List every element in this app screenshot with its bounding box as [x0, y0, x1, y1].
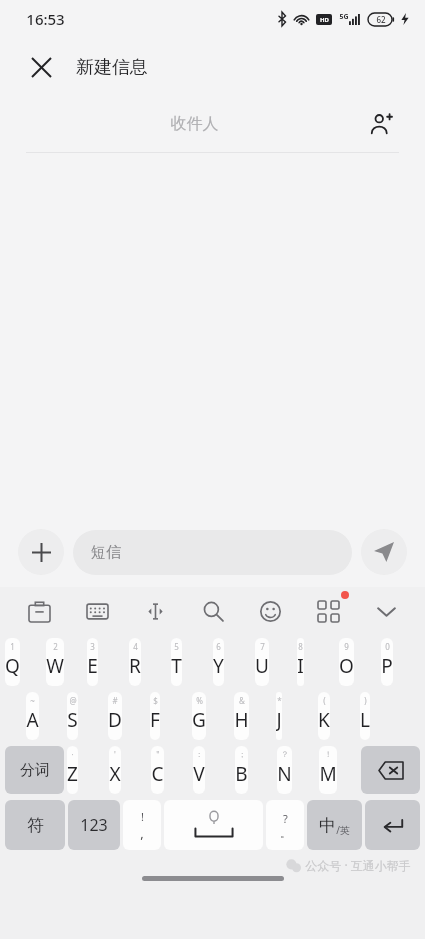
button[interactable]: 6 — [213, 638, 224, 686]
staticText: , — [140, 824, 144, 842]
staticText: · — [71, 749, 74, 760]
button[interactable]: # — [108, 692, 122, 740]
staticText: 新建信息 — [76, 56, 148, 79]
staticText: A — [26, 707, 39, 733]
button[interactable]: $ — [150, 692, 160, 740]
button[interactable]: & — [234, 692, 249, 740]
button[interactable]: ! — [123, 800, 161, 850]
staticText: 0 — [385, 641, 390, 652]
staticText: /英 — [336, 823, 350, 837]
staticText: M — [319, 761, 337, 787]
button[interactable]: Space — [164, 800, 263, 850]
staticText: ； — [238, 749, 246, 759]
button[interactable]: ( — [318, 692, 330, 740]
staticText: 。 — [280, 826, 291, 840]
button[interactable]: · — [67, 746, 78, 794]
button[interactable]: ? — [266, 800, 304, 850]
staticText: 4 — [133, 641, 138, 652]
staticText: B — [235, 761, 248, 787]
button[interactable]: Enter — [365, 800, 420, 850]
staticText: @ — [69, 695, 77, 706]
button[interactable]: 符 — [5, 800, 65, 850]
staticText: E — [87, 653, 98, 679]
button[interactable]: 9 — [339, 638, 354, 686]
staticText: ) — [364, 695, 367, 706]
staticText: S — [67, 707, 78, 733]
button[interactable]: Emoji — [253, 594, 287, 628]
button[interactable]: Backspace — [361, 746, 420, 794]
staticText: U — [255, 653, 269, 679]
staticText: " — [156, 749, 160, 760]
staticText: 2 — [53, 641, 58, 652]
staticText: # — [112, 695, 118, 706]
staticText: 9 — [344, 641, 349, 652]
staticText: 5 — [174, 641, 179, 652]
button[interactable]: ： — [193, 746, 205, 794]
staticText: G — [192, 707, 206, 733]
staticText: 中 — [319, 815, 336, 836]
button[interactable]: Add contact — [363, 106, 399, 142]
staticText: 符 — [27, 815, 44, 836]
staticText: Q — [5, 653, 20, 679]
button[interactable]: 分词 — [5, 746, 64, 794]
staticText: ： — [195, 749, 203, 759]
button[interactable]: ' — [109, 746, 121, 794]
button[interactable]: " — [151, 746, 164, 794]
staticText: 8 — [298, 641, 303, 652]
staticText: R — [129, 653, 141, 679]
button[interactable]: 1 — [5, 638, 20, 686]
staticText: 短信 — [91, 543, 121, 562]
button[interactable]: Add attachment — [18, 529, 64, 575]
button[interactable]: % — [192, 692, 206, 740]
button[interactable]: * — [276, 692, 282, 740]
staticText: O — [339, 653, 354, 679]
button[interactable]: ！ — [319, 746, 337, 794]
staticText: V — [193, 761, 205, 787]
staticText: X — [109, 761, 121, 787]
staticText: 6 — [216, 641, 221, 652]
staticText: Z — [67, 761, 78, 787]
button[interactable]: 4 — [129, 638, 141, 686]
staticText: $ — [153, 695, 158, 706]
button[interactable]: 8 — [297, 638, 304, 686]
staticText: & — [239, 695, 245, 706]
staticText: D — [108, 707, 122, 733]
staticText: Y — [213, 653, 224, 679]
staticText: ? — [283, 811, 288, 826]
staticText: 1 — [10, 641, 15, 652]
staticText: 收件人 — [26, 114, 363, 134]
button[interactable]: 0 — [381, 638, 393, 686]
staticText: ' — [114, 749, 116, 760]
staticText: W — [46, 653, 64, 679]
button[interactable]: Switch language — [307, 800, 362, 850]
button[interactable]: 5 — [171, 638, 182, 686]
staticText: K — [318, 707, 330, 733]
button[interactable]: 2 — [46, 638, 64, 686]
button[interactable]: ~ — [26, 692, 39, 740]
button[interactable]: 123 — [68, 800, 120, 850]
button[interactable]: More — [311, 594, 345, 628]
button[interactable]: Move cursor — [138, 594, 172, 628]
staticText: 分词 — [20, 761, 50, 780]
staticText: N — [277, 761, 292, 787]
staticText: 16:53 — [26, 9, 65, 29]
button[interactable]: Hide keyboard — [369, 594, 403, 628]
staticText: * — [277, 695, 282, 706]
button[interactable]: 7 — [255, 638, 269, 686]
staticText: % — [196, 695, 203, 706]
staticText: 5G — [339, 12, 349, 22]
button[interactable]: @ — [67, 692, 78, 740]
button[interactable]: Send — [361, 529, 407, 575]
button[interactable]: ； — [235, 746, 248, 794]
button[interactable]: Keyboard — [80, 594, 114, 628]
button[interactable]: ) — [360, 692, 370, 740]
button[interactable]: Clipboard — [22, 594, 56, 628]
button[interactable]: ？ — [277, 746, 292, 794]
button[interactable]: 短信 — [73, 530, 352, 575]
button[interactable]: 3 — [87, 638, 98, 686]
staticText: ！ — [324, 749, 332, 759]
button[interactable]: Search — [196, 594, 230, 628]
button[interactable]: Close — [24, 50, 58, 84]
staticText: 123 — [80, 814, 108, 836]
staticText: ？ — [281, 749, 289, 759]
